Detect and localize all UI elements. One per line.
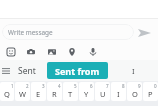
staticText: Q bbox=[4, 89, 10, 99]
staticText: T bbox=[68, 89, 73, 99]
button[interactable]: Send bbox=[135, 24, 153, 42]
button[interactable]: P bbox=[143, 82, 158, 101]
staticText: Sent bbox=[18, 65, 36, 77]
staticText: 1 bbox=[11, 83, 14, 89]
button[interactable]: T bbox=[63, 82, 78, 101]
button[interactable]: I bbox=[111, 82, 126, 101]
button[interactable]: I bbox=[116, 60, 150, 81]
staticText: U bbox=[100, 89, 106, 99]
button[interactable]: Location bbox=[63, 43, 81, 61]
staticText: Write message bbox=[8, 28, 53, 37]
staticText: W bbox=[19, 89, 26, 99]
staticText: R bbox=[52, 89, 57, 99]
staticText: 3 bbox=[42, 83, 45, 89]
staticText: 4 bbox=[58, 83, 61, 89]
staticText: P bbox=[148, 89, 153, 99]
button[interactable]: Gallery bbox=[43, 43, 61, 61]
staticText: O bbox=[132, 89, 138, 99]
button[interactable]: E bbox=[31, 82, 46, 101]
button[interactable]: Q bbox=[0, 82, 14, 101]
button[interactable]: W bbox=[15, 82, 30, 101]
staticText: 7 bbox=[106, 83, 109, 89]
staticText: I bbox=[117, 89, 120, 99]
button[interactable]: U bbox=[95, 82, 110, 101]
button[interactable]: Camera bbox=[22, 43, 40, 61]
staticText: 6 bbox=[90, 83, 93, 89]
staticText: I bbox=[132, 66, 135, 76]
button[interactable]: O bbox=[127, 82, 142, 101]
staticText: 2 bbox=[26, 83, 29, 89]
staticText: Sent from bbox=[55, 65, 100, 77]
staticText: 8 bbox=[122, 83, 125, 89]
staticText: 9 bbox=[138, 83, 141, 89]
staticText: 0 bbox=[154, 83, 157, 89]
button[interactable]: Y bbox=[79, 82, 94, 101]
button[interactable]: Sticker bbox=[2, 43, 20, 61]
button[interactable]: R bbox=[47, 82, 62, 101]
button[interactable]: Sent bbox=[11, 60, 43, 81]
button[interactable]: Write message bbox=[2, 24, 134, 40]
staticText: Y bbox=[84, 89, 89, 99]
staticText: 5 bbox=[74, 83, 77, 89]
button[interactable]: Voice input bbox=[84, 43, 102, 61]
button[interactable]: Sent from bbox=[47, 62, 108, 79]
button[interactable]: Clipboard bbox=[0, 60, 12, 81]
staticText: E bbox=[36, 89, 41, 99]
